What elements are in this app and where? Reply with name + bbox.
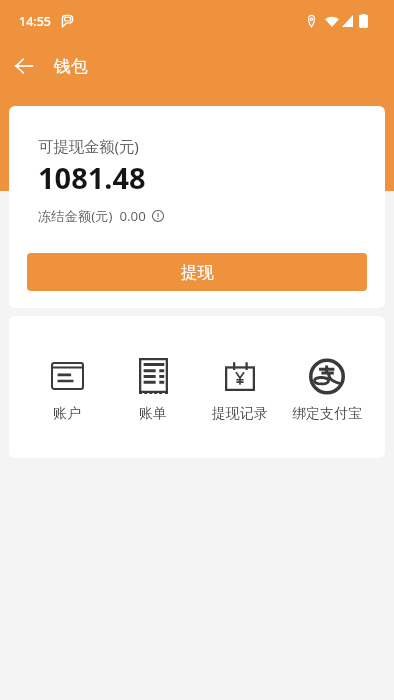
staticText: 1081.48: [38, 158, 146, 197]
button[interactable]: 提现记录: [196, 357, 283, 423]
staticText: 钱包: [54, 56, 88, 77]
button[interactable]: 账单: [110, 357, 196, 423]
button[interactable]: 提现: [27, 253, 367, 291]
staticText: 提现: [181, 262, 214, 283]
button[interactable]: 账户: [24, 357, 110, 423]
staticText: 提现记录: [212, 405, 268, 423]
button[interactable]: Back: [6, 48, 42, 84]
staticText: 绑定支付宝: [292, 405, 362, 423]
staticText: 账户: [53, 405, 81, 423]
staticText: 账单: [139, 405, 167, 423]
staticText: 冻结金额(元) 0.00: [38, 207, 146, 225]
button[interactable]: 绑定支付宝: [283, 357, 370, 423]
staticText: 14:55: [19, 13, 52, 30]
staticText: 可提现金额(元): [38, 136, 139, 157]
